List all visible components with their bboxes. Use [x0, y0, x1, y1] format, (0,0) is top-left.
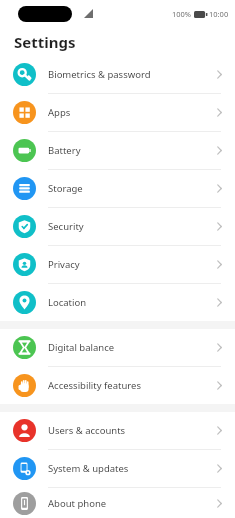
button[interactable]: Battery [0, 132, 235, 169]
staticText: 100% [172, 9, 192, 19]
button[interactable]: Apps [0, 94, 235, 131]
button[interactable]: Accessibility features [0, 367, 235, 404]
button[interactable]: Users & accounts [0, 412, 235, 449]
staticText: Accessibility features [48, 379, 217, 392]
button[interactable]: Security [0, 208, 235, 245]
staticText: Apps [48, 106, 217, 119]
staticText: Storage [48, 182, 217, 195]
button[interactable]: Privacy [0, 246, 235, 283]
staticText: Battery [48, 144, 217, 157]
staticText: Security [48, 220, 217, 233]
staticText: Digital balance [48, 341, 217, 354]
button[interactable]: Digital balance [0, 329, 235, 366]
staticText: Users & accounts [48, 424, 217, 437]
staticText: 10:00 [209, 9, 229, 19]
staticText: Biometrics & password [48, 68, 217, 81]
button[interactable]: Location [0, 284, 235, 321]
staticText: Privacy [48, 258, 217, 271]
staticText: Settings [14, 32, 76, 52]
button[interactable]: System & updates [0, 450, 235, 487]
button[interactable]: Biometrics & password [0, 56, 235, 93]
staticText: System & updates [48, 462, 217, 475]
button[interactable]: About phone [0, 488, 235, 518]
staticText: Location [48, 296, 217, 309]
staticText: About phone [48, 497, 217, 510]
button[interactable]: Storage [0, 170, 235, 207]
